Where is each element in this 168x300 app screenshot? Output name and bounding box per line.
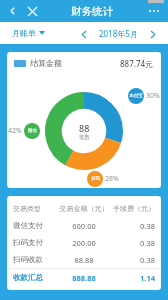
staticText: 笔数 xyxy=(79,134,90,141)
staticText: 结算金额 xyxy=(30,58,62,68)
button[interactable]: More options xyxy=(145,2,163,20)
button[interactable]: 扫码支付 xyxy=(7,234,161,251)
staticText: 2018年5月 xyxy=(99,28,138,39)
staticText: 200.00 xyxy=(58,238,110,248)
staticText: 微信支付 xyxy=(13,221,58,230)
staticText: 1.14 xyxy=(110,273,155,283)
button[interactable]: 扫码收款 xyxy=(7,251,161,268)
staticText: 887.74元 xyxy=(120,58,154,69)
button[interactable]: 交易类型 xyxy=(7,200,161,217)
staticText: 扫码 xyxy=(91,176,100,182)
button[interactable]: 微信支付 xyxy=(7,217,161,234)
staticText: 88.88 xyxy=(58,255,110,265)
staticText: 28% xyxy=(105,174,119,184)
staticText: 交易金额（元） xyxy=(58,204,110,213)
staticText: 交易类型 xyxy=(13,204,58,213)
button[interactable]: 收款汇总 xyxy=(7,269,161,286)
staticText: 600.00 xyxy=(58,221,110,231)
staticText: 88 xyxy=(79,122,90,134)
staticText: 0.38 xyxy=(110,238,155,248)
staticText: 0.38 xyxy=(110,221,155,231)
button[interactable]: Close xyxy=(24,3,40,19)
button[interactable]: Next month xyxy=(148,29,158,39)
staticText: 月账单 xyxy=(12,28,36,38)
staticText: 支付宝 xyxy=(129,93,143,99)
button[interactable]: Back xyxy=(5,3,21,19)
button[interactable]: Previous month xyxy=(79,29,89,39)
staticText: 收款汇总 xyxy=(13,273,58,282)
staticText: 财务统计 xyxy=(71,5,113,18)
staticText: 0.38 xyxy=(110,255,155,265)
staticText: 42% xyxy=(8,126,22,136)
staticText: 微信 xyxy=(28,128,37,134)
staticText: 30% xyxy=(146,91,160,101)
staticText: 手续费（元） xyxy=(110,204,155,213)
staticText: 888.88 xyxy=(58,273,110,283)
button[interactable]: 月账单 xyxy=(12,28,45,38)
staticText: 扫码收款 xyxy=(13,255,58,264)
staticText: 扫码支付 xyxy=(13,238,58,247)
